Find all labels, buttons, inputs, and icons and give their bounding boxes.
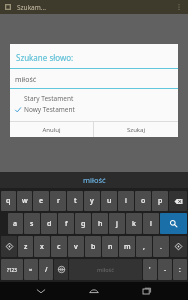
button[interactable]: Shift <box>170 236 187 257</box>
button[interactable]: k <box>126 213 142 234</box>
button[interactable]: g <box>75 213 91 234</box>
staticText: x <box>40 242 44 252</box>
staticText: s <box>30 219 34 229</box>
staticText: z <box>24 242 28 252</box>
button[interactable]: l <box>143 213 159 234</box>
staticText: g <box>81 219 86 229</box>
staticText: ?123 <box>7 267 17 273</box>
button[interactable]: i <box>118 191 134 211</box>
staticText: j <box>116 219 118 229</box>
staticText: t <box>74 196 77 206</box>
button[interactable]: Shift <box>1 236 17 257</box>
staticText: ¤ <box>29 266 33 273</box>
button[interactable]: m <box>119 236 135 257</box>
button[interactable]: , <box>136 236 152 257</box>
staticText: Stary Testament <box>24 94 74 103</box>
button[interactable]: ?123 <box>1 259 23 280</box>
button[interactable]: q <box>1 191 16 211</box>
button[interactable]: / <box>39 259 53 280</box>
button[interactable]: Stary Testament <box>10 93 178 104</box>
staticText: q <box>6 196 11 206</box>
staticText: p <box>158 196 163 206</box>
button[interactable]: w <box>17 191 32 211</box>
staticText: o <box>141 196 146 206</box>
button[interactable]: f <box>58 213 74 234</box>
button[interactable]: r <box>50 191 66 211</box>
button[interactable]: a <box>8 213 23 234</box>
staticText: f <box>65 219 68 229</box>
staticText: ' <box>149 265 151 274</box>
button[interactable]: j <box>109 213 125 234</box>
button[interactable]: s <box>24 213 40 234</box>
staticText: b <box>91 242 96 252</box>
staticText: miłość <box>97 266 114 273</box>
staticText: Szukam... <box>17 3 47 12</box>
staticText: Szukaj <box>127 126 145 134</box>
button[interactable]: : <box>173 259 187 280</box>
staticText: miłość <box>15 75 37 85</box>
button[interactable]: y <box>84 191 100 211</box>
button[interactable]: o <box>135 191 151 211</box>
button[interactable]: v <box>68 236 84 257</box>
button[interactable]: c <box>51 236 67 257</box>
button[interactable]: t <box>67 191 83 211</box>
button[interactable]: Ostatnie aplikacje <box>135 282 159 300</box>
button[interactable]: ' <box>143 259 157 280</box>
button[interactable]: e <box>33 191 49 211</box>
staticText: l <box>150 219 152 229</box>
staticText: . <box>160 242 162 252</box>
button[interactable]: Backspace <box>169 191 187 211</box>
button[interactable]: Anuluj <box>10 122 93 137</box>
button[interactable]: Ekran główny <box>82 282 106 300</box>
button[interactable]: ¤ <box>24 259 38 280</box>
staticText: , <box>143 242 145 252</box>
button[interactable]: Szukaj <box>94 122 178 137</box>
staticText: u <box>107 196 112 206</box>
staticText: miłość <box>83 175 106 185</box>
staticText: a <box>13 219 18 229</box>
staticText: - <box>164 265 167 274</box>
button[interactable]: d <box>41 213 57 234</box>
staticText: / <box>45 265 48 274</box>
staticText: w <box>22 196 28 206</box>
button[interactable]: . <box>153 236 169 257</box>
button[interactable]: miłość <box>83 175 106 185</box>
staticText: Nowy Testament <box>24 105 75 114</box>
button[interactable]: miłość <box>15 75 178 85</box>
button[interactable]: p <box>152 191 168 211</box>
staticText: y <box>90 196 94 206</box>
button[interactable]: Nowy Testament <box>10 104 178 115</box>
staticText: Szukane słowo: <box>16 52 74 63</box>
staticText: k <box>132 219 136 229</box>
button[interactable]: Więcej opcji <box>173 1 185 13</box>
staticText: d <box>47 219 52 229</box>
button[interactable]: b <box>85 236 101 257</box>
button[interactable]: u <box>101 191 117 211</box>
staticText: r <box>57 196 60 206</box>
staticText: e <box>39 196 44 206</box>
button[interactable]: n <box>102 236 118 257</box>
button[interactable]: miłość <box>69 259 142 280</box>
button[interactable]: x <box>34 236 50 257</box>
button[interactable]: Szukaj <box>160 213 187 234</box>
button[interactable]: z <box>18 236 33 257</box>
staticText: Anuluj <box>42 126 61 134</box>
button[interactable]: Wstecz <box>29 282 53 300</box>
staticText: i <box>125 196 127 206</box>
staticText: h <box>98 219 103 229</box>
staticText: n <box>108 242 113 252</box>
staticText: : <box>179 265 181 274</box>
staticText: c <box>57 242 61 252</box>
button[interactable]: Zmień język <box>54 259 68 280</box>
button[interactable]: - <box>158 259 172 280</box>
button[interactable]: h <box>92 213 108 234</box>
staticText: m <box>124 242 131 252</box>
button[interactable]: Nawigacja <box>3 2 13 12</box>
staticText: v <box>74 242 78 252</box>
